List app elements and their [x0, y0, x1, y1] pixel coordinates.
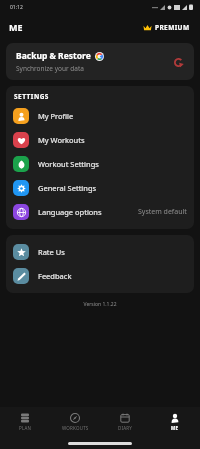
staticText: My Profile	[38, 111, 74, 121]
staticText: My Workouts	[38, 135, 85, 145]
button[interactable]: ME	[150, 407, 200, 437]
staticText: Version 1.1.22	[0, 301, 200, 308]
button[interactable]: Workout Settings	[6, 152, 194, 176]
staticText: PREMIUM	[155, 23, 190, 32]
button[interactable]: Sync	[170, 54, 186, 70]
staticText: ME	[171, 425, 179, 431]
staticText: Language options	[38, 207, 102, 217]
button[interactable]: Feedback	[6, 264, 194, 288]
button[interactable]: WORKOUTS	[50, 407, 100, 437]
staticText: Workout Settings	[38, 159, 99, 169]
staticText: 01:12	[10, 4, 23, 11]
button[interactable]: My Profile	[6, 104, 194, 128]
staticText: System default	[138, 207, 187, 217]
staticText: DIARY	[118, 425, 133, 431]
button[interactable]: Language options	[6, 200, 194, 224]
staticText: Rate Us	[38, 247, 65, 257]
button[interactable]: PREMIUM	[141, 20, 192, 35]
button[interactable]: DIARY	[100, 407, 150, 437]
staticText: PLAN	[19, 425, 32, 431]
button[interactable]: Rate Us	[6, 240, 194, 264]
button[interactable]: PLAN	[0, 407, 50, 437]
staticText: Backup & Restore	[16, 50, 91, 62]
staticText: Synchronize your data	[16, 64, 84, 73]
staticText: General Settings	[38, 183, 97, 193]
button[interactable]: General Settings	[6, 176, 194, 200]
button[interactable]: Backup & Restore	[6, 43, 194, 80]
staticText: SETTINGS	[14, 92, 49, 101]
staticText: WORKOUTS	[62, 425, 89, 431]
staticText: ME	[9, 21, 23, 33]
staticText: Feedback	[38, 271, 72, 281]
button[interactable]: My Workouts	[6, 128, 194, 152]
